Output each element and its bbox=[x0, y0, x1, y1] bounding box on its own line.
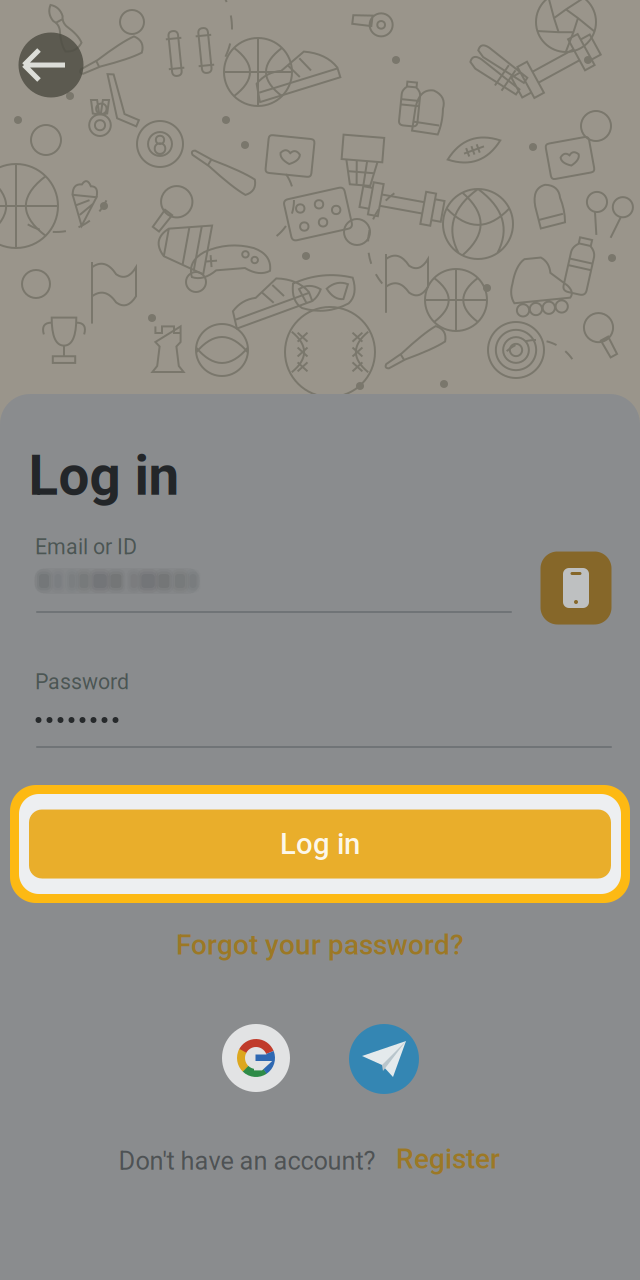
button[interactable]: Back bbox=[18, 32, 83, 97]
button[interactable]: Sign in with Google bbox=[221, 1023, 291, 1093]
staticText: Email or ID bbox=[35, 534, 137, 559]
staticText: Register bbox=[396, 1143, 500, 1175]
button[interactable]: Sign in with Telegram bbox=[349, 1024, 419, 1094]
button[interactable]: Register bbox=[388, 1137, 508, 1181]
button[interactable]: Use phone number bbox=[540, 551, 611, 624]
button[interactable]: Forgot your password? bbox=[160, 921, 480, 969]
staticText: Log in bbox=[28, 444, 179, 508]
staticText: Forgot your password? bbox=[176, 929, 464, 961]
staticText: Don't have an account? bbox=[118, 1146, 375, 1176]
button[interactable]: Log in bbox=[10, 785, 630, 903]
staticText: Log in bbox=[280, 827, 360, 861]
staticText: Password bbox=[35, 669, 129, 694]
